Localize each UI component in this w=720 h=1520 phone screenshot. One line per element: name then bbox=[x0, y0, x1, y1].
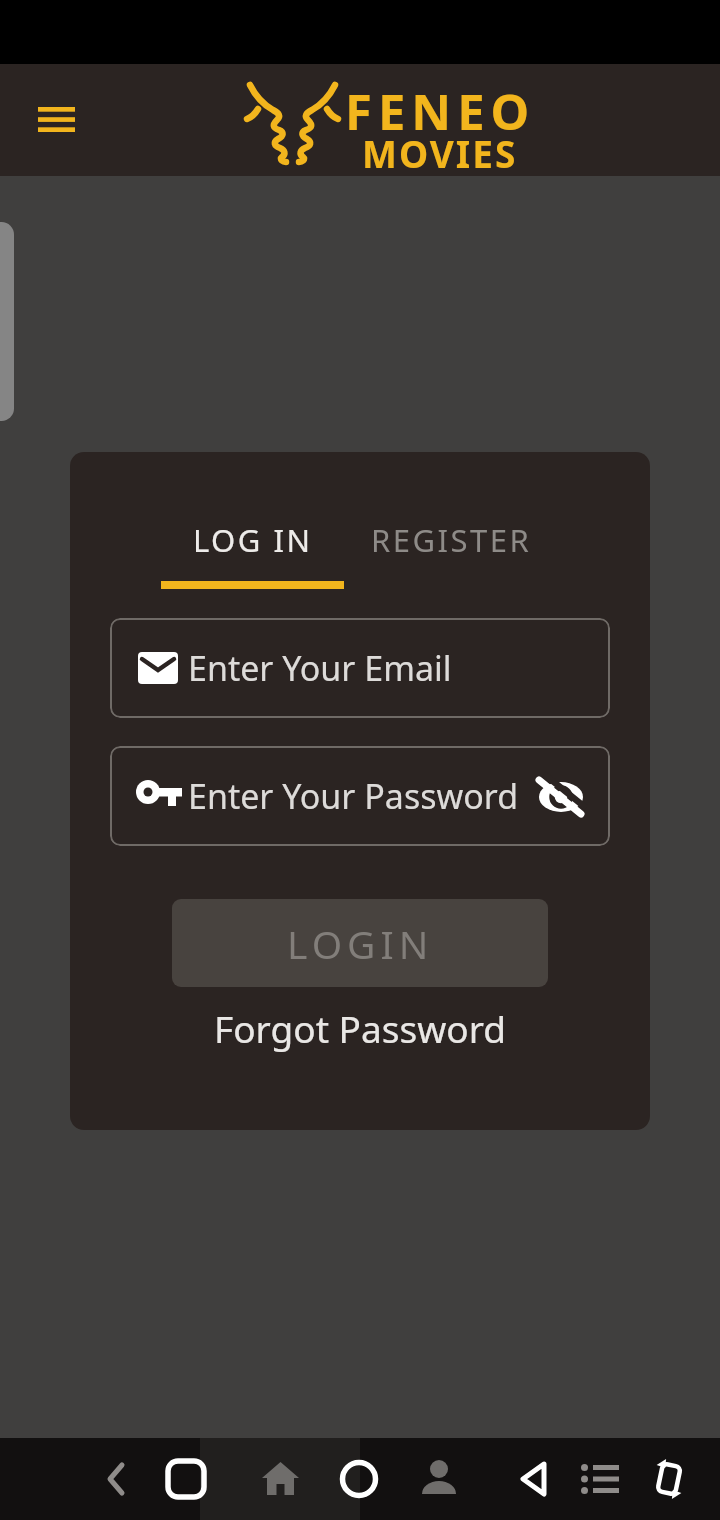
button[interactable] bbox=[645, 1451, 693, 1507]
staticText: LOGIN bbox=[287, 917, 434, 970]
staticText: REGISTER bbox=[371, 519, 532, 561]
button[interactable] bbox=[24, 94, 88, 146]
button[interactable]: REGISTER bbox=[360, 502, 543, 578]
button[interactable] bbox=[96, 1455, 144, 1503]
button[interactable] bbox=[335, 1451, 383, 1507]
staticText: FENEO bbox=[345, 78, 536, 132]
button[interactable] bbox=[576, 1451, 624, 1507]
staticText: Enter Your Email bbox=[188, 645, 452, 691]
button[interactable] bbox=[162, 1451, 210, 1507]
button[interactable] bbox=[509, 1451, 557, 1507]
staticText: Enter Your Password bbox=[188, 773, 519, 819]
button[interactable]: LOG IN bbox=[161, 502, 344, 578]
button[interactable]: Enter Your Password bbox=[110, 746, 610, 846]
button[interactable] bbox=[256, 1451, 304, 1507]
button[interactable]: LOGIN bbox=[172, 899, 548, 987]
button[interactable] bbox=[534, 772, 584, 816]
button[interactable]: Forgot Password bbox=[70, 1000, 650, 1056]
staticText: Forgot Password bbox=[214, 1003, 506, 1053]
button[interactable] bbox=[415, 1451, 463, 1507]
button[interactable]: Enter Your Email bbox=[110, 618, 610, 718]
staticText: MOVIES bbox=[362, 128, 518, 174]
staticText: LOG IN bbox=[193, 519, 313, 561]
